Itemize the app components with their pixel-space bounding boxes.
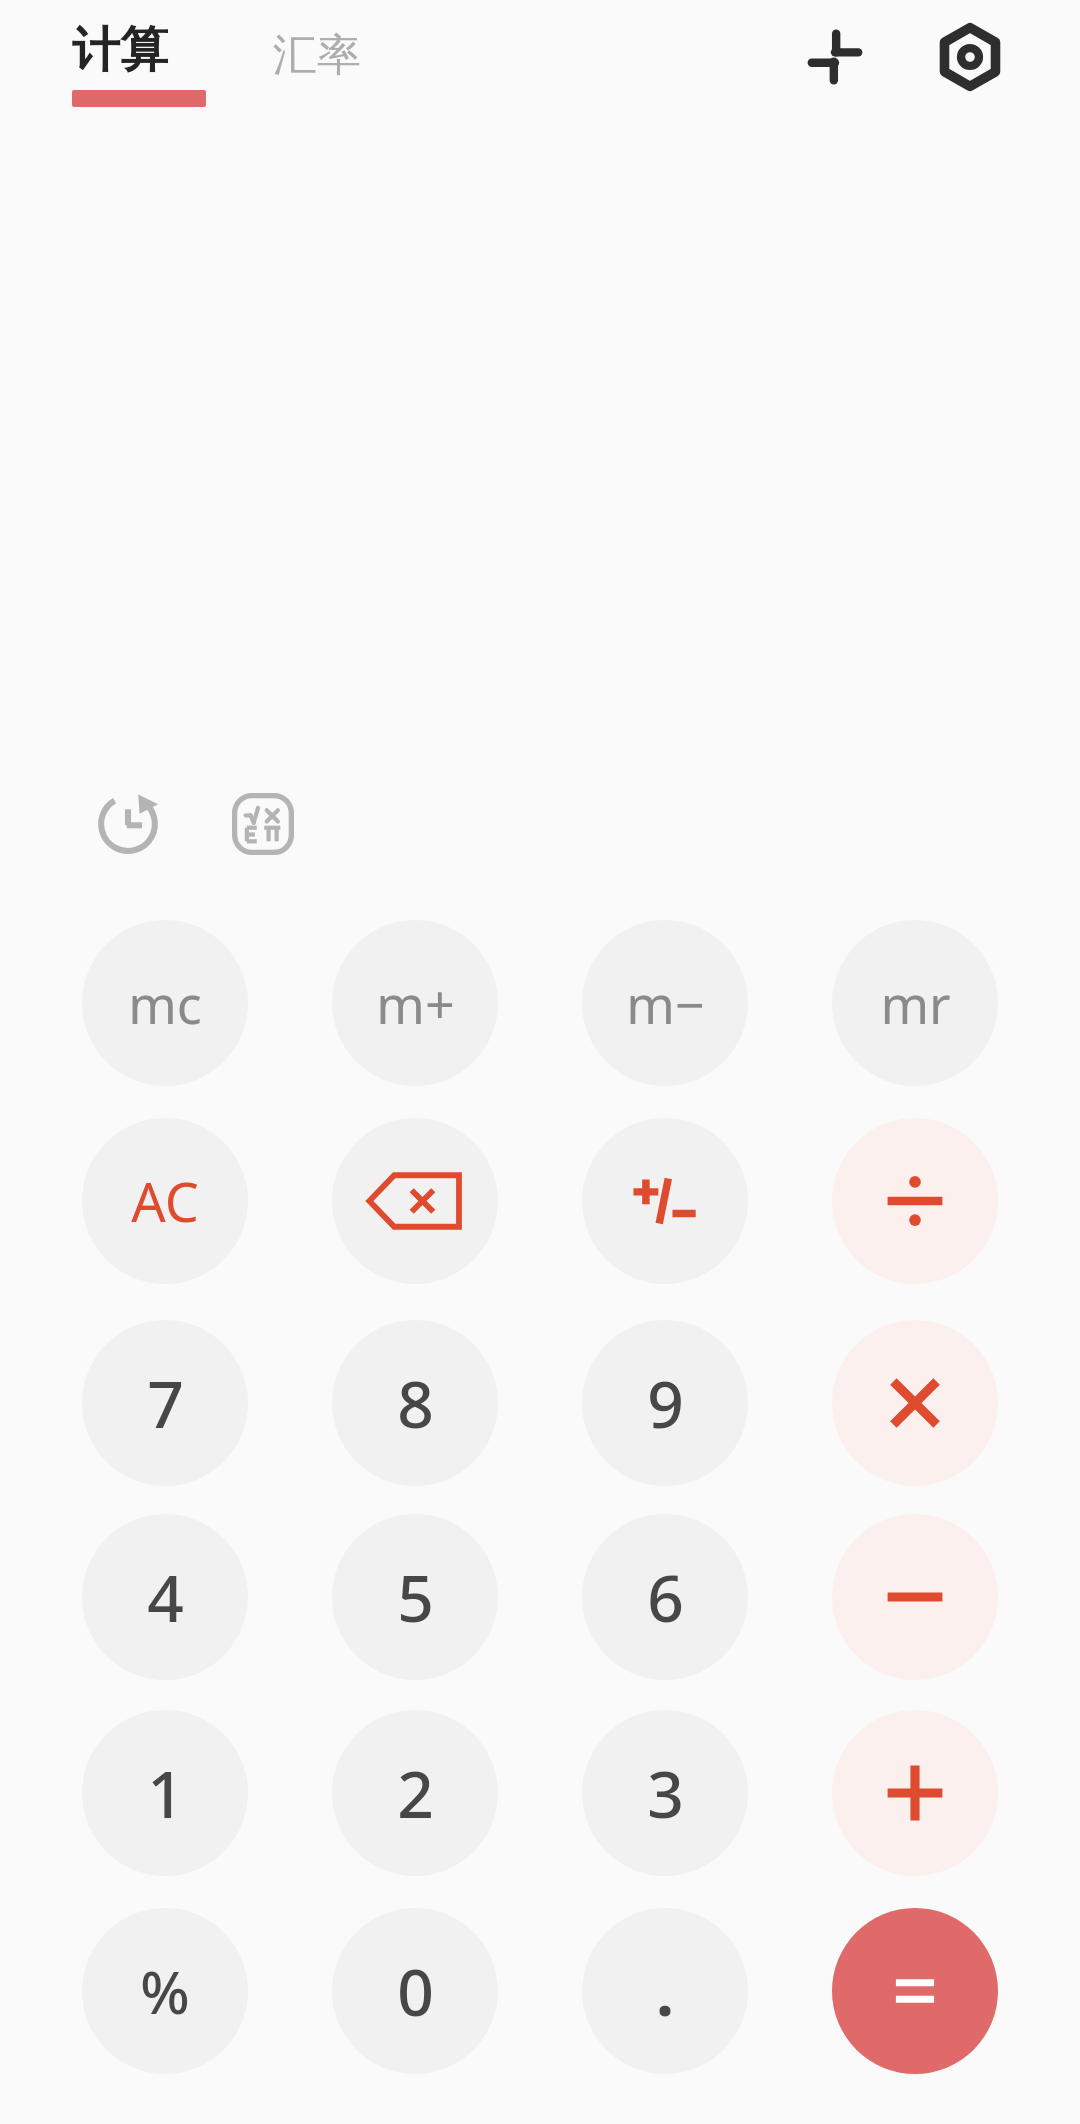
staticText: .	[656, 1948, 674, 2035]
button[interactable]: 3	[582, 1710, 748, 1876]
staticText: 8	[397, 1360, 434, 1447]
button[interactable]: 计算	[72, 20, 206, 107]
staticText: 汇率	[273, 28, 361, 83]
button[interactable]: 8	[332, 1320, 498, 1486]
button[interactable]: Minus	[832, 1514, 998, 1680]
staticText: 4	[147, 1554, 184, 1641]
button[interactable]: mc	[82, 920, 248, 1086]
staticText: mr	[880, 968, 951, 1039]
staticText: mc	[128, 968, 202, 1039]
button[interactable]: Scientific	[225, 786, 301, 862]
button[interactable]: Plus minus	[582, 1118, 748, 1284]
staticText: 7	[147, 1360, 184, 1447]
staticText: 计算	[72, 20, 168, 80]
button[interactable]: 1	[82, 1710, 248, 1876]
button[interactable]: %	[82, 1908, 248, 2074]
button[interactable]: mr	[832, 920, 998, 1086]
staticText: 5	[397, 1554, 434, 1641]
button[interactable]: 汇率	[273, 28, 361, 83]
button[interactable]: 4	[82, 1514, 248, 1680]
staticText: 9	[647, 1360, 684, 1447]
staticText: 6	[647, 1554, 684, 1641]
button[interactable]: 7	[82, 1320, 248, 1486]
button[interactable]: Equals	[832, 1908, 998, 2074]
staticText: 3	[647, 1750, 684, 1837]
staticText: AC	[131, 1164, 199, 1238]
button[interactable]: 5	[332, 1514, 498, 1680]
button[interactable]: 0	[332, 1908, 498, 2074]
staticText: 2	[397, 1750, 434, 1837]
button[interactable]: m−	[582, 920, 748, 1086]
staticText: m+	[376, 968, 455, 1039]
button[interactable]: Plus	[832, 1710, 998, 1876]
staticText: 1	[147, 1750, 184, 1837]
staticText: %	[140, 1952, 190, 2031]
button[interactable]: Divide	[832, 1118, 998, 1284]
staticText: m−	[626, 968, 705, 1039]
button[interactable]: History	[90, 786, 166, 862]
button[interactable]: m+	[332, 920, 498, 1086]
staticText: 0	[397, 1948, 434, 2035]
button[interactable]: Backspace	[332, 1118, 498, 1284]
button[interactable]: 9	[582, 1320, 748, 1486]
button[interactable]: Settings	[925, 12, 1015, 102]
button[interactable]: .	[582, 1908, 748, 2074]
button[interactable]: AC	[82, 1118, 248, 1284]
button[interactable]: Multiply	[832, 1320, 998, 1486]
button[interactable]: Collapse	[790, 12, 880, 102]
button[interactable]: 2	[332, 1710, 498, 1876]
button[interactable]: 6	[582, 1514, 748, 1680]
